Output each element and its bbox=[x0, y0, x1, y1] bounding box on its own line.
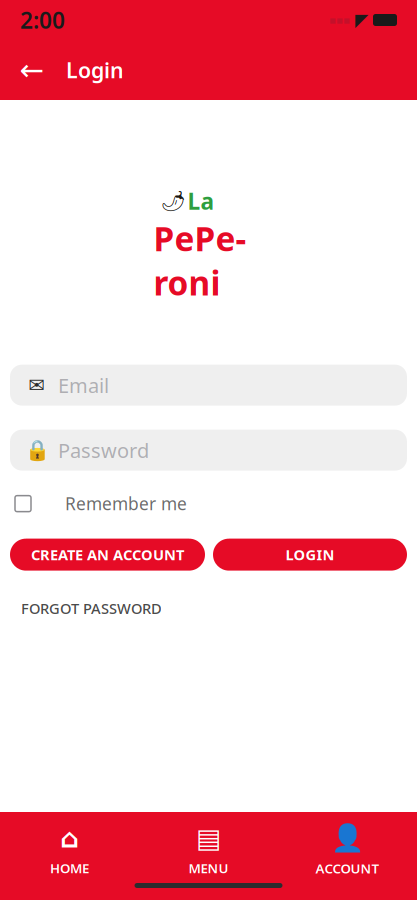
staticText: 🔒 bbox=[24, 439, 49, 462]
staticText: ⌂ bbox=[60, 823, 79, 853]
staticText: ← bbox=[19, 53, 44, 87]
staticText: LOGIN bbox=[285, 545, 334, 564]
button[interactable]: LOGIN bbox=[213, 539, 407, 571]
staticText: 👤 bbox=[331, 823, 364, 853]
staticText: HOME bbox=[50, 859, 89, 877]
button[interactable]: FORGOT PASSWORD bbox=[21, 593, 162, 624]
button[interactable]: 👤 bbox=[278, 817, 417, 883]
button[interactable]: ⌂ bbox=[0, 817, 139, 883]
staticText: Remember me bbox=[65, 492, 187, 515]
staticText: FORGOT PASSWORD bbox=[21, 599, 162, 618]
staticText: Login bbox=[66, 56, 124, 84]
staticText: La bbox=[187, 186, 214, 216]
staticText: ◤ bbox=[355, 10, 368, 30]
staticText: CREATE AN ACCOUNT bbox=[31, 545, 184, 564]
staticText: ▤ bbox=[196, 823, 221, 853]
button[interactable]: CREATE AN ACCOUNT bbox=[10, 539, 205, 571]
button[interactable]: Back bbox=[10, 48, 54, 92]
staticText: ACCOUNT bbox=[315, 859, 379, 877]
staticText: PePeroni bbox=[153, 216, 246, 305]
staticText: 2:00 bbox=[20, 5, 65, 35]
staticText: ▪▪▪ bbox=[329, 14, 350, 26]
staticText: Email bbox=[58, 372, 109, 398]
staticText: Password bbox=[58, 437, 149, 463]
button[interactable]: ▤ bbox=[139, 817, 278, 883]
button[interactable]: Remember me bbox=[0, 489, 417, 519]
staticText: MENU bbox=[188, 859, 228, 877]
staticText: 🌶 bbox=[160, 190, 185, 212]
staticText: ✉ bbox=[28, 374, 45, 396]
